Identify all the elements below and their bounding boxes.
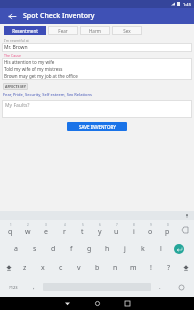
button[interactable]: Resentment — [4, 26, 46, 35]
staticText: t — [81, 227, 84, 237]
staticText: e — [44, 227, 48, 237]
staticText: x — [41, 263, 45, 273]
staticText: q — [8, 227, 13, 237]
button[interactable]: Sex — [112, 26, 142, 35]
button[interactable]: Harm — [80, 26, 110, 35]
button[interactable]: z — [16, 258, 34, 277]
button[interactable]: Mr. Brown — [2, 43, 192, 52]
staticText: w — [25, 227, 31, 237]
staticText: 2 — [27, 223, 29, 227]
button[interactable]: j — [116, 239, 134, 258]
button[interactable]: ?123 — [1, 277, 25, 297]
staticText: His attention to my wife — [4, 59, 55, 65]
button[interactable]: Recents — [112, 297, 142, 310]
button[interactable]: My Faults? — [2, 100, 192, 118]
staticText: a — [14, 244, 18, 254]
button[interactable]: k — [134, 239, 152, 258]
button[interactable]: 2 — [19, 220, 37, 239]
button[interactable]: Key — [176, 220, 193, 239]
staticText: u — [114, 227, 119, 237]
button[interactable]: d — [44, 239, 62, 258]
staticText: s — [33, 244, 37, 254]
button[interactable]: ? — [160, 258, 178, 277]
staticText: The Cause — [4, 53, 21, 58]
button[interactable]: c — [52, 258, 70, 277]
button[interactable]: 6 — [91, 220, 108, 239]
staticText: ! — [150, 263, 152, 273]
button[interactable]: 1 — [1, 220, 19, 239]
staticText: 4 — [64, 223, 66, 227]
button[interactable]: Home — [82, 297, 112, 310]
staticText: j — [124, 244, 126, 254]
staticText: SAVE INVENTORY — [79, 124, 116, 130]
staticText: Mr. Brown — [4, 44, 28, 51]
staticText: Spot Check Inventory — [23, 11, 95, 21]
button[interactable]: Back — [52, 297, 82, 310]
staticText: I'm resentful at — [4, 38, 29, 43]
button[interactable]: 9 — [142, 220, 159, 239]
button[interactable]: Voice input — [180, 211, 194, 220]
staticText: 3 — [45, 223, 47, 227]
staticText: c — [59, 263, 63, 273]
button[interactable]: Key — [1, 258, 16, 277]
button[interactable]: 7 — [108, 220, 125, 239]
staticText: 8 — [133, 223, 135, 227]
staticText: b — [95, 263, 100, 273]
button[interactable]: 3 — [37, 220, 55, 239]
button[interactable]: h — [98, 239, 116, 258]
button[interactable]: v — [70, 258, 88, 277]
staticText: AFFECTS MY — [5, 84, 26, 89]
button[interactable]: SAVE INVENTORY — [67, 122, 127, 131]
button[interactable]: f — [62, 239, 80, 258]
staticText: d — [51, 244, 56, 254]
button[interactable]: Back — [6, 10, 18, 22]
staticText: . — [159, 283, 161, 291]
staticText: 5 — [82, 223, 84, 227]
button[interactable]: Enter — [174, 244, 184, 254]
staticText: l — [160, 244, 162, 254]
button[interactable]: ! — [142, 258, 160, 277]
staticText: Harm — [89, 28, 101, 34]
staticText: My Faults? — [5, 102, 30, 109]
staticText: Resentment — [12, 28, 38, 34]
staticText: y — [98, 227, 102, 237]
staticText: p — [165, 227, 170, 237]
staticText: 9 — [150, 223, 152, 227]
button[interactable]: a — [6, 239, 25, 258]
staticText: m — [130, 263, 137, 273]
staticText: i — [133, 227, 135, 237]
staticText: Fear — [58, 28, 68, 34]
button[interactable]: His attention to my wife — [2, 58, 192, 80]
staticText: ?123 — [9, 285, 18, 290]
staticText: n — [113, 263, 118, 273]
staticText: f — [70, 244, 73, 254]
button[interactable]: , — [25, 277, 43, 297]
button[interactable]: Fear — [48, 26, 78, 35]
button[interactable]: x — [34, 258, 52, 277]
button[interactable]: 0 — [159, 220, 176, 239]
staticText: v — [77, 263, 81, 273]
button[interactable]: g — [80, 239, 98, 258]
button[interactable]: b — [88, 258, 106, 277]
button[interactable]: l — [152, 239, 170, 258]
button[interactable]: n — [106, 258, 124, 277]
button[interactable]: 4 — [55, 220, 73, 239]
staticText: , — [33, 283, 35, 291]
button[interactable]: Key — [178, 258, 193, 277]
staticText: r — [63, 227, 66, 237]
staticText: h — [105, 244, 110, 254]
button[interactable]: 8 — [125, 220, 142, 239]
button[interactable]: 5 — [73, 220, 91, 239]
button[interactable]: s — [25, 239, 44, 258]
button[interactable]: Emoji — [169, 277, 193, 297]
staticText: o — [148, 227, 153, 237]
staticText: 6 — [99, 223, 101, 227]
staticText: Brown may get my job at the office — [4, 73, 78, 79]
staticText: z — [23, 263, 27, 273]
button[interactable]: m — [124, 258, 142, 277]
staticText: 1:45 — [183, 2, 191, 6]
staticText: Sex — [123, 28, 131, 34]
button[interactable]: AFFECTS MY — [3, 83, 28, 90]
